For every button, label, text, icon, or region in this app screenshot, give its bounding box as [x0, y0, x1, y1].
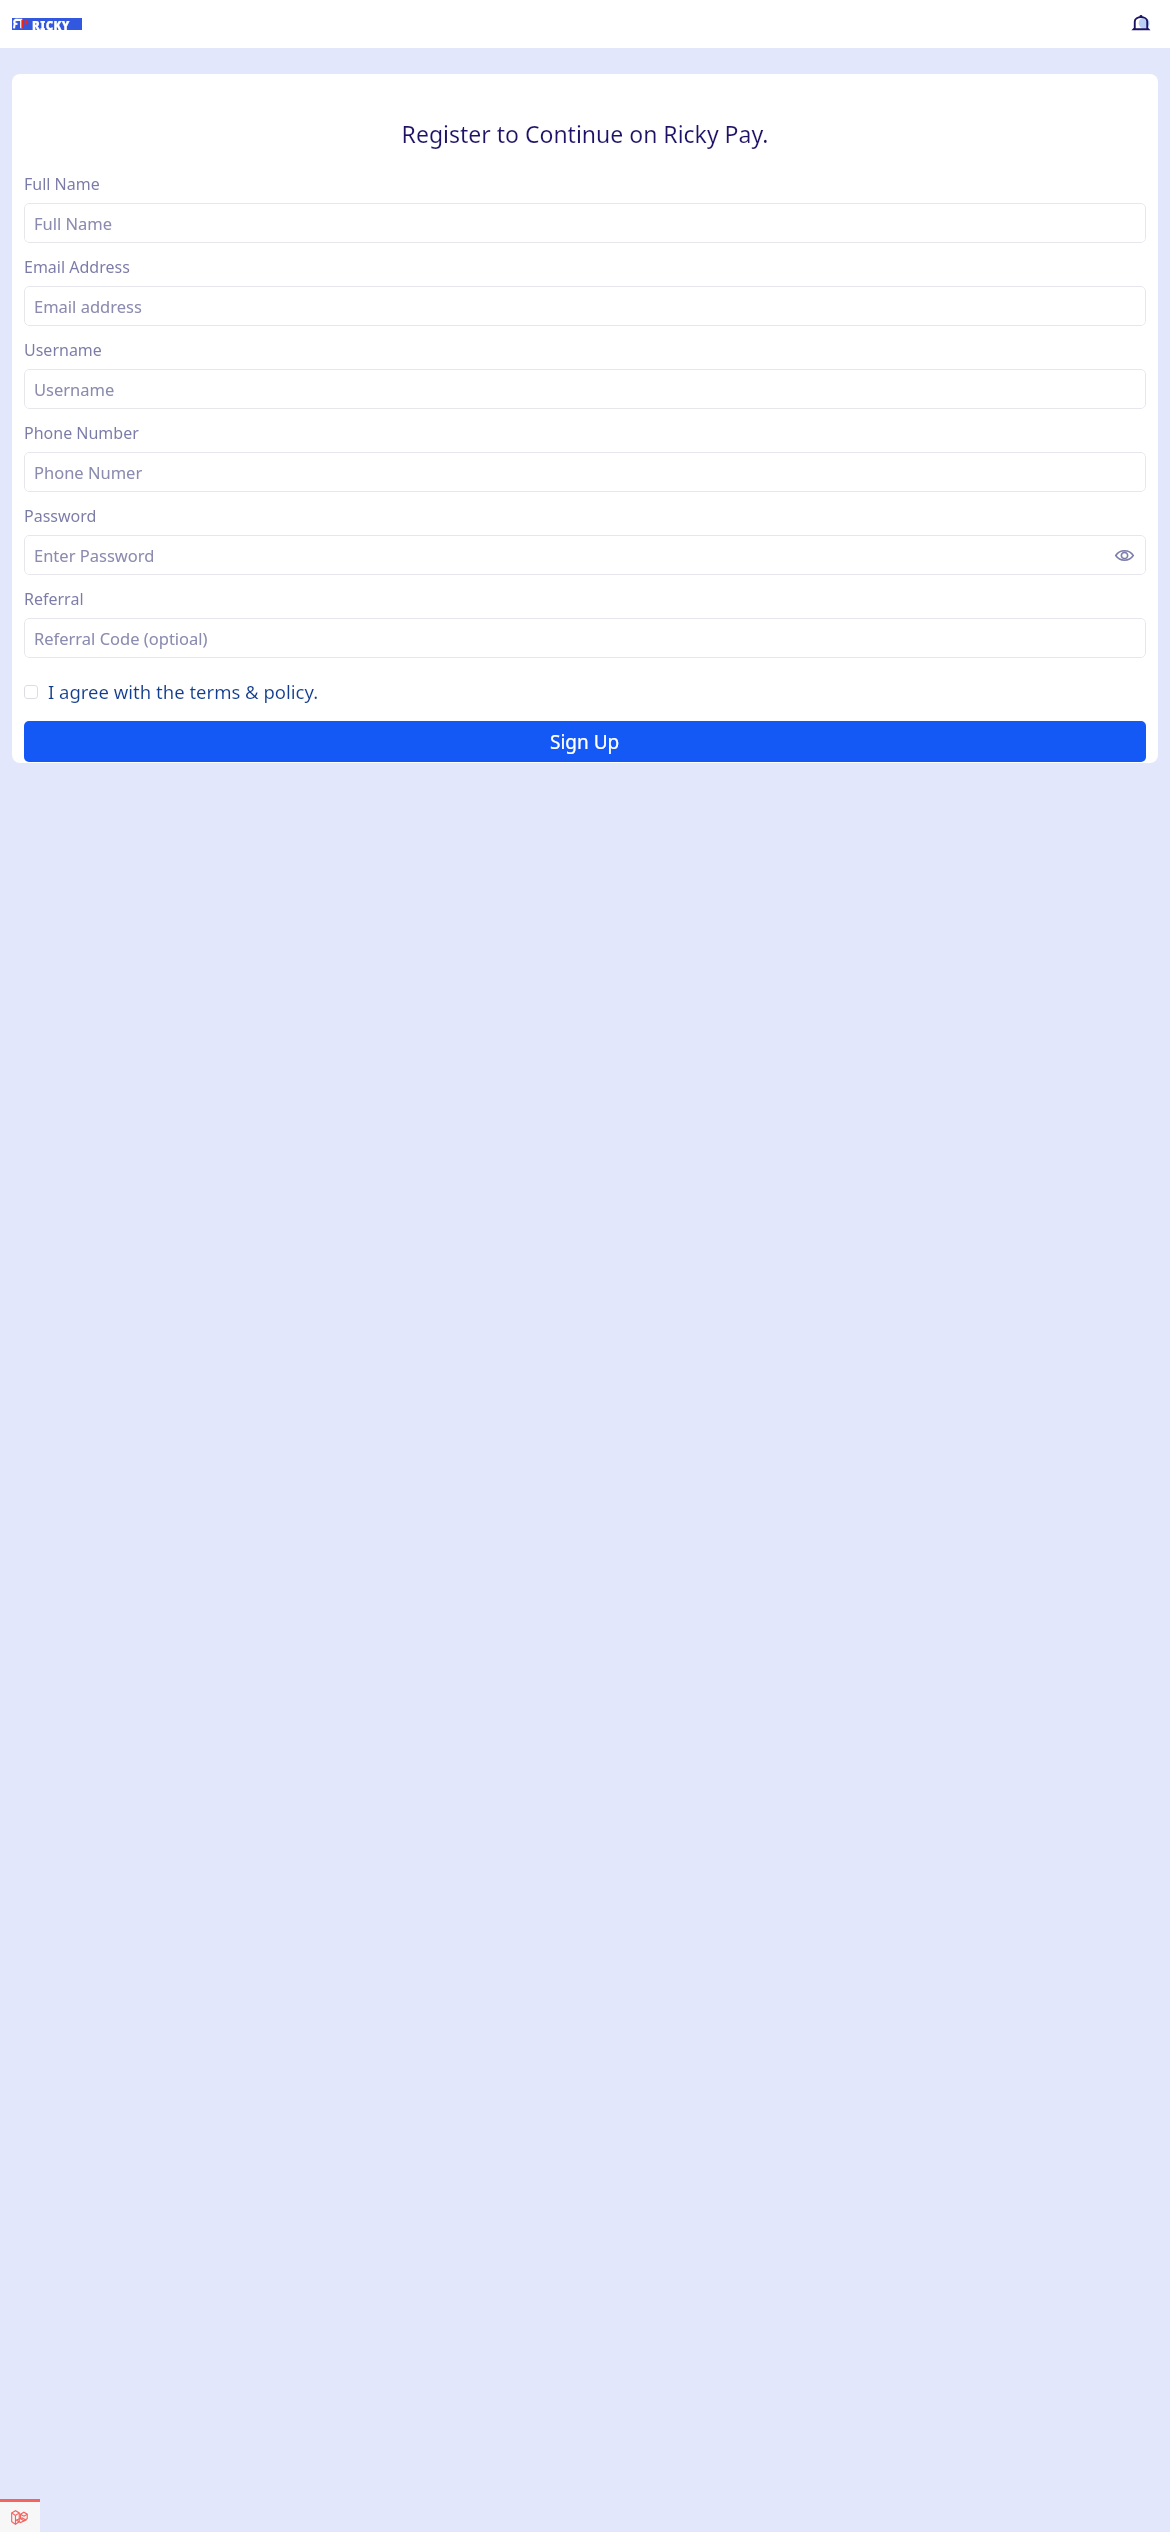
- button[interactable]: Enter Password: [24, 535, 1146, 575]
- button[interactable]: Ricky Pay home: [12, 18, 82, 30]
- button[interactable]: Phone Numer: [24, 452, 1146, 492]
- staticText: RICKY PAY: [32, 18, 82, 30]
- button[interactable]: Notifications: [1124, 7, 1158, 41]
- button[interactable]: Full Name: [24, 203, 1146, 243]
- staticText: Username: [24, 339, 102, 361]
- staticText: Phone Numer: [34, 461, 1136, 483]
- staticText: Email Address: [24, 256, 130, 278]
- staticText: Password: [24, 505, 97, 527]
- staticText: Phone Number: [24, 422, 139, 444]
- button[interactable]: Laravel debug bar: [0, 2499, 40, 2532]
- staticText: Enter Password: [34, 544, 1112, 566]
- staticText: Username: [34, 378, 1136, 400]
- button[interactable]: Referral Code (optioal): [24, 618, 1146, 658]
- button[interactable]: I agree with the terms & policy.: [24, 679, 1146, 704]
- staticText: I agree with the terms & policy.: [48, 679, 319, 704]
- button[interactable]: Sign Up: [24, 721, 1146, 762]
- staticText: Referral: [24, 588, 84, 610]
- button[interactable]: Username: [24, 369, 1146, 409]
- staticText: Referral Code (optioal): [34, 627, 1136, 649]
- staticText: Register to Continue on Ricky Pay.: [24, 118, 1146, 149]
- staticText: Full Name: [34, 212, 1136, 234]
- staticText: Full Name: [24, 173, 100, 195]
- staticText: Sign Up: [550, 729, 620, 755]
- button[interactable]: Email address: [24, 286, 1146, 326]
- staticText: Email address: [34, 295, 1136, 317]
- button[interactable]: Show password: [1112, 543, 1136, 567]
